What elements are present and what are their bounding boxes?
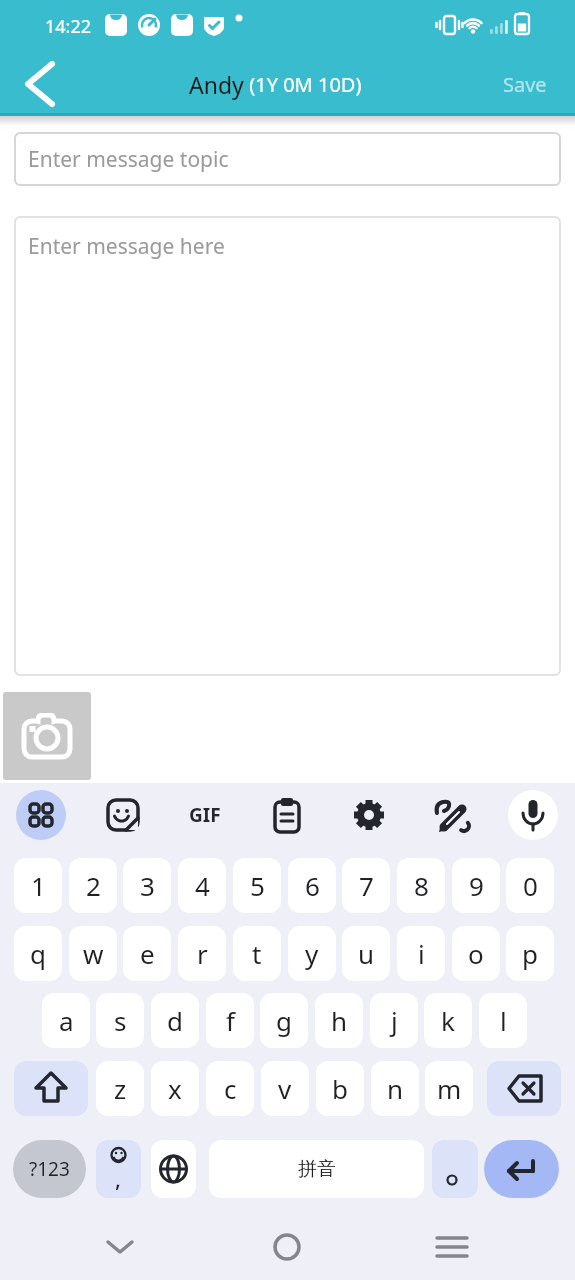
button[interactable]: e — [123, 926, 171, 981]
button[interactable] — [98, 790, 148, 840]
button[interactable]: 3 — [123, 858, 171, 913]
button[interactable]: j — [370, 993, 418, 1048]
staticText: i — [418, 936, 425, 971]
staticText: q — [30, 936, 46, 971]
staticText: n — [387, 1071, 404, 1106]
staticText: 9 — [469, 868, 484, 903]
button[interactable] — [426, 790, 476, 840]
staticText: x — [168, 1071, 182, 1106]
button[interactable] — [432, 1140, 478, 1198]
button[interactable]: 2 — [69, 858, 117, 913]
button[interactable] — [151, 1140, 196, 1198]
button[interactable] — [14, 1061, 88, 1116]
staticText: b — [332, 1071, 348, 1106]
button[interactable]: o — [452, 926, 500, 981]
staticText: j — [391, 1003, 398, 1038]
button[interactable] — [428, 1222, 476, 1270]
button[interactable] — [487, 1061, 561, 1116]
staticText: k — [441, 1003, 455, 1038]
button[interactable] — [344, 790, 394, 840]
staticText: Save — [503, 71, 547, 98]
button[interactable]: 5 — [233, 858, 281, 913]
button[interactable]: t — [233, 926, 281, 981]
button[interactable] — [16, 790, 66, 840]
staticText: 1 — [31, 868, 46, 903]
button[interactable]: ?123 — [13, 1140, 86, 1198]
button[interactable]: 8 — [397, 858, 445, 913]
staticText: GIF — [189, 802, 221, 828]
button[interactable]: n — [371, 1061, 419, 1116]
button[interactable]: d — [151, 993, 199, 1048]
staticText: f — [226, 1003, 235, 1038]
button[interactable]: f — [206, 993, 254, 1048]
staticText: l — [500, 1003, 507, 1038]
staticText: v — [278, 1071, 292, 1106]
staticText: a — [59, 1003, 74, 1038]
button[interactable]: z — [96, 1061, 144, 1116]
staticText: r — [197, 936, 208, 971]
button[interactable]: x — [151, 1061, 199, 1116]
button[interactable]: r — [178, 926, 226, 981]
staticText: (1Y 0M 10D) — [244, 71, 362, 98]
button[interactable]: Enter message here — [14, 216, 561, 676]
staticText: u — [358, 936, 375, 971]
button[interactable]: 拼音 — [209, 1140, 424, 1198]
button[interactable]: w — [69, 926, 117, 981]
button[interactable]: 1 — [14, 858, 62, 913]
staticText: 2 — [86, 868, 101, 903]
staticText: m — [437, 1071, 462, 1106]
button[interactable]: s — [96, 993, 144, 1048]
staticText: h — [331, 1003, 348, 1038]
button[interactable] — [263, 1222, 311, 1270]
button[interactable]: p — [506, 926, 554, 981]
staticText: , — [115, 1163, 122, 1193]
button[interactable]: Enter message topic — [14, 132, 561, 186]
button[interactable] — [262, 790, 312, 840]
staticText: w — [83, 936, 104, 971]
staticText: t — [252, 936, 262, 971]
staticText: 拼音 — [298, 1157, 336, 1181]
button[interactable]: GIF — [180, 790, 230, 840]
staticText: d — [167, 1003, 183, 1038]
staticText: o — [468, 936, 484, 971]
staticText: ?123 — [29, 1156, 70, 1182]
staticText: 6 — [305, 868, 320, 903]
button[interactable]: 0 — [506, 858, 554, 913]
button[interactable]: 9 — [452, 858, 500, 913]
staticText: Enter message topic — [28, 145, 229, 174]
staticText: y — [305, 936, 319, 971]
button[interactable]: l — [479, 993, 527, 1048]
button[interactable]: a — [42, 993, 90, 1048]
button[interactable] — [3, 692, 91, 780]
button[interactable]: u — [342, 926, 390, 981]
staticText: 3 — [140, 868, 155, 903]
button[interactable]: q — [14, 926, 62, 981]
staticText: 4 — [195, 868, 210, 903]
button[interactable]: , — [96, 1140, 141, 1198]
staticText: p — [522, 936, 538, 971]
staticText: g — [276, 1003, 292, 1038]
staticText: Andy — [189, 69, 244, 100]
button[interactable]: 6 — [288, 858, 336, 913]
button[interactable] — [508, 790, 558, 840]
staticText: 8 — [414, 868, 429, 903]
button[interactable] — [16, 58, 68, 110]
button[interactable]: i — [397, 926, 445, 981]
button[interactable] — [96, 1222, 144, 1270]
button[interactable]: c — [206, 1061, 254, 1116]
button[interactable]: b — [316, 1061, 364, 1116]
button[interactable]: m — [425, 1061, 473, 1116]
button[interactable]: k — [424, 993, 472, 1048]
button[interactable]: h — [315, 993, 363, 1048]
button[interactable] — [484, 1140, 559, 1198]
button[interactable]: y — [288, 926, 336, 981]
button[interactable]: 4 — [178, 858, 226, 913]
button[interactable]: v — [261, 1061, 309, 1116]
staticText: e — [140, 936, 155, 971]
button[interactable]: g — [260, 993, 308, 1048]
button[interactable]: Save — [490, 58, 560, 110]
staticText: 7 — [359, 868, 374, 903]
button[interactable]: 7 — [342, 858, 390, 913]
staticText: Enter message here — [28, 232, 225, 261]
staticText: z — [114, 1071, 127, 1106]
